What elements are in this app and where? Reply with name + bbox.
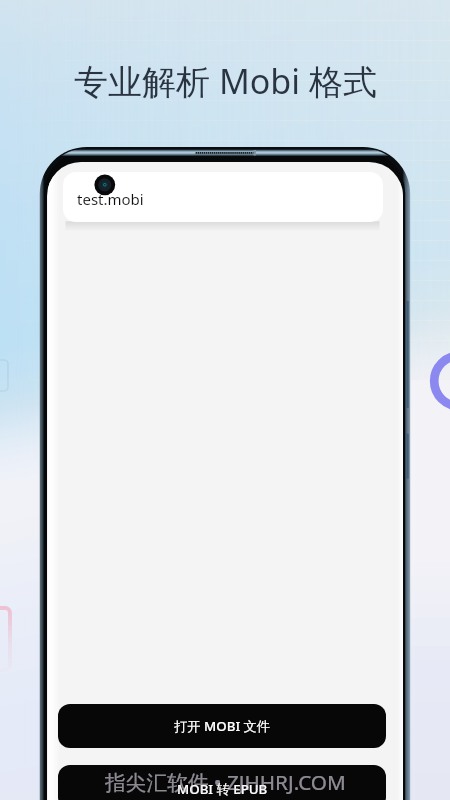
button[interactable]: MOBI 转 EPUB xyxy=(58,765,386,800)
staticText: 指尖汇软件 • ZJHHRJ.COM xyxy=(105,768,346,796)
staticText: MOBI 转 EPUB xyxy=(177,780,268,798)
button[interactable]: test.mobi xyxy=(63,172,383,222)
staticText: test.mobi xyxy=(77,189,144,209)
staticText: 打开 MOBI 文件 xyxy=(174,717,271,735)
button[interactable]: 打开 MOBI 文件 xyxy=(58,704,386,748)
staticText: 专业解析 Mobi 格式 xyxy=(74,58,377,104)
